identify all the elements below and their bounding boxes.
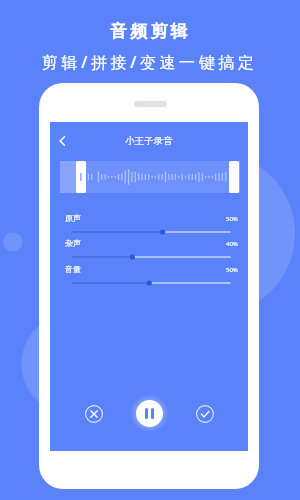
button[interactable] bbox=[72, 252, 230, 262]
button[interactable]: Confirm bbox=[196, 405, 214, 423]
staticText: 音频剪辑 bbox=[110, 21, 191, 42]
staticText: 原声 bbox=[65, 213, 81, 223]
button[interactable] bbox=[72, 227, 230, 237]
staticText: 剪辑/拼接/变速一键搞定 bbox=[42, 51, 258, 73]
button[interactable]: Pause bbox=[136, 400, 163, 427]
button[interactable] bbox=[72, 278, 230, 288]
button[interactable]: Cancel bbox=[85, 405, 103, 423]
staticText: 50% bbox=[226, 215, 238, 223]
staticText: 音量 bbox=[65, 264, 81, 274]
staticText: 40% bbox=[226, 240, 238, 248]
staticText: 杂声 bbox=[65, 238, 81, 248]
staticText: 50% bbox=[226, 266, 238, 274]
staticText: 小王子录音 bbox=[125, 135, 173, 147]
button[interactable]: Back bbox=[54, 132, 72, 150]
